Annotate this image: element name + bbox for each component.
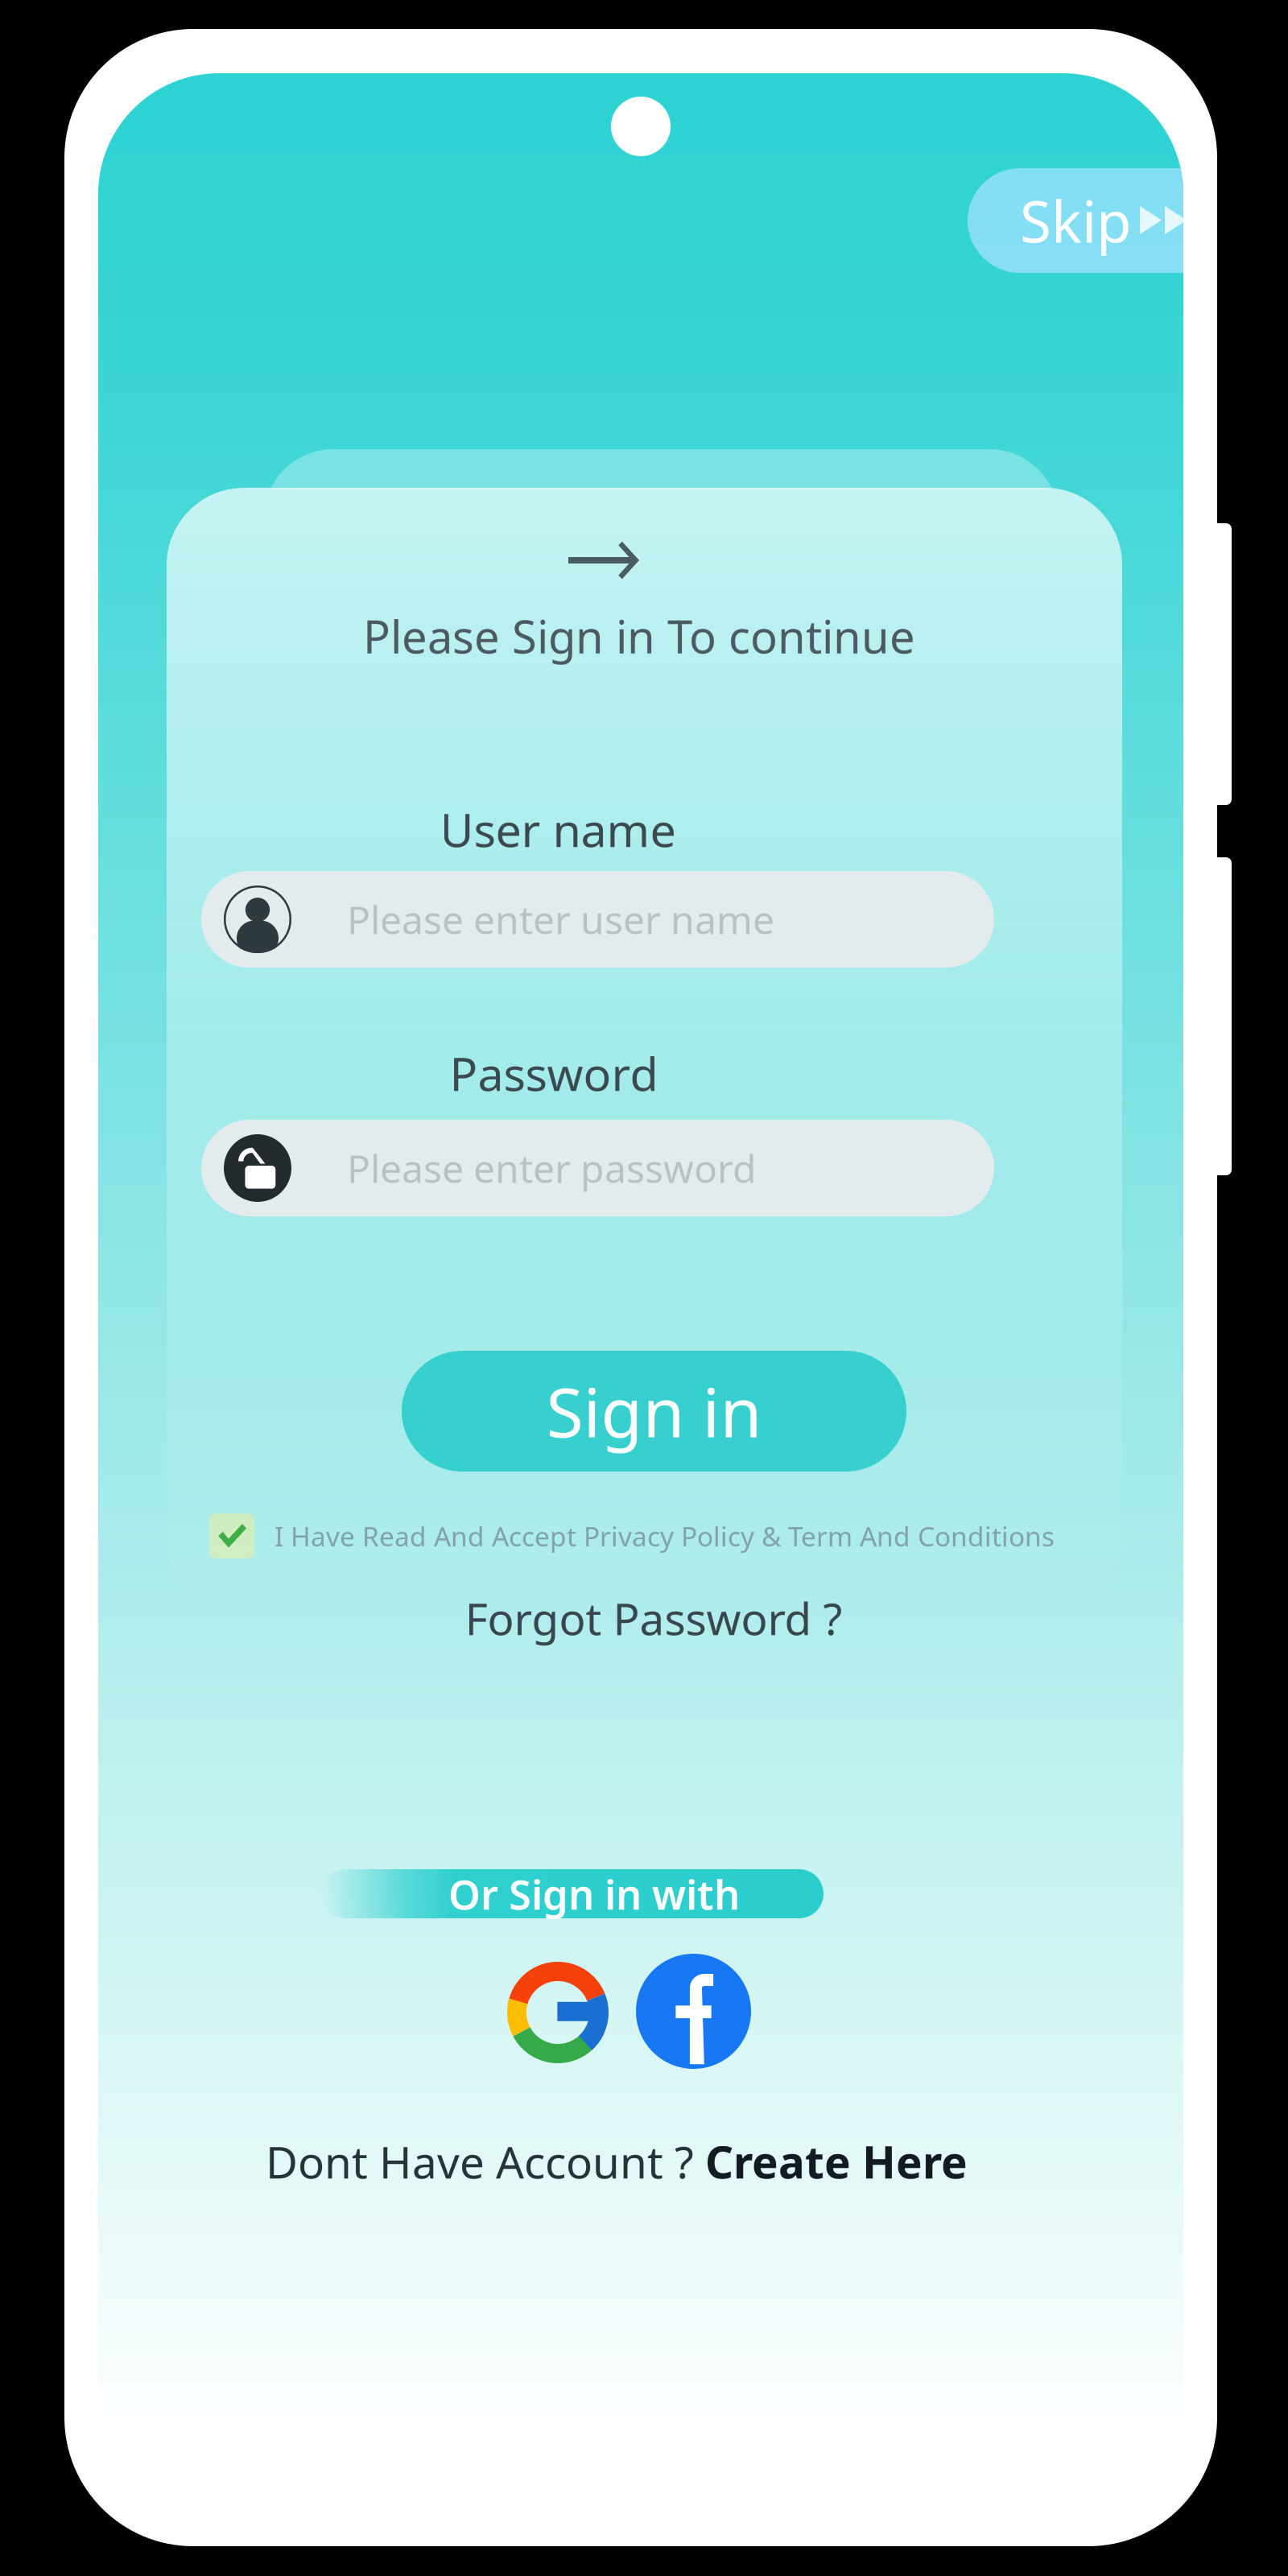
staticText: User name: [440, 798, 676, 860]
button[interactable]: Forgot Password ?: [412, 1587, 895, 1649]
button[interactable]: Sign in with Google: [507, 1962, 609, 2063]
button[interactable]: Sign in with Facebook: [636, 1954, 751, 2069]
button[interactable]: I Have Read And Accept Privacy Policy & …: [209, 1513, 1055, 1558]
staticText: Password: [450, 1042, 658, 1104]
staticText: I Have Read And Accept Privacy Policy & …: [275, 1518, 1055, 1554]
staticText: Dont Have Account ?: [266, 2132, 705, 2191]
staticText: Please Sign in To continue: [363, 606, 915, 666]
button[interactable]: Sign in: [402, 1351, 906, 1472]
staticText: Please enter password: [347, 1142, 757, 1194]
staticText: Skip: [1020, 183, 1131, 258]
staticText: Please enter user name: [347, 894, 774, 945]
staticText: Or Sign in with: [448, 1867, 740, 1921]
staticText: Create Here: [705, 2132, 968, 2191]
staticText: Forgot Password ?: [465, 1589, 842, 1647]
button[interactable]: Dont Have Account ?: [222, 2129, 1011, 2194]
staticText: Sign in: [546, 1366, 762, 1456]
button[interactable]: Skip: [968, 168, 1233, 273]
